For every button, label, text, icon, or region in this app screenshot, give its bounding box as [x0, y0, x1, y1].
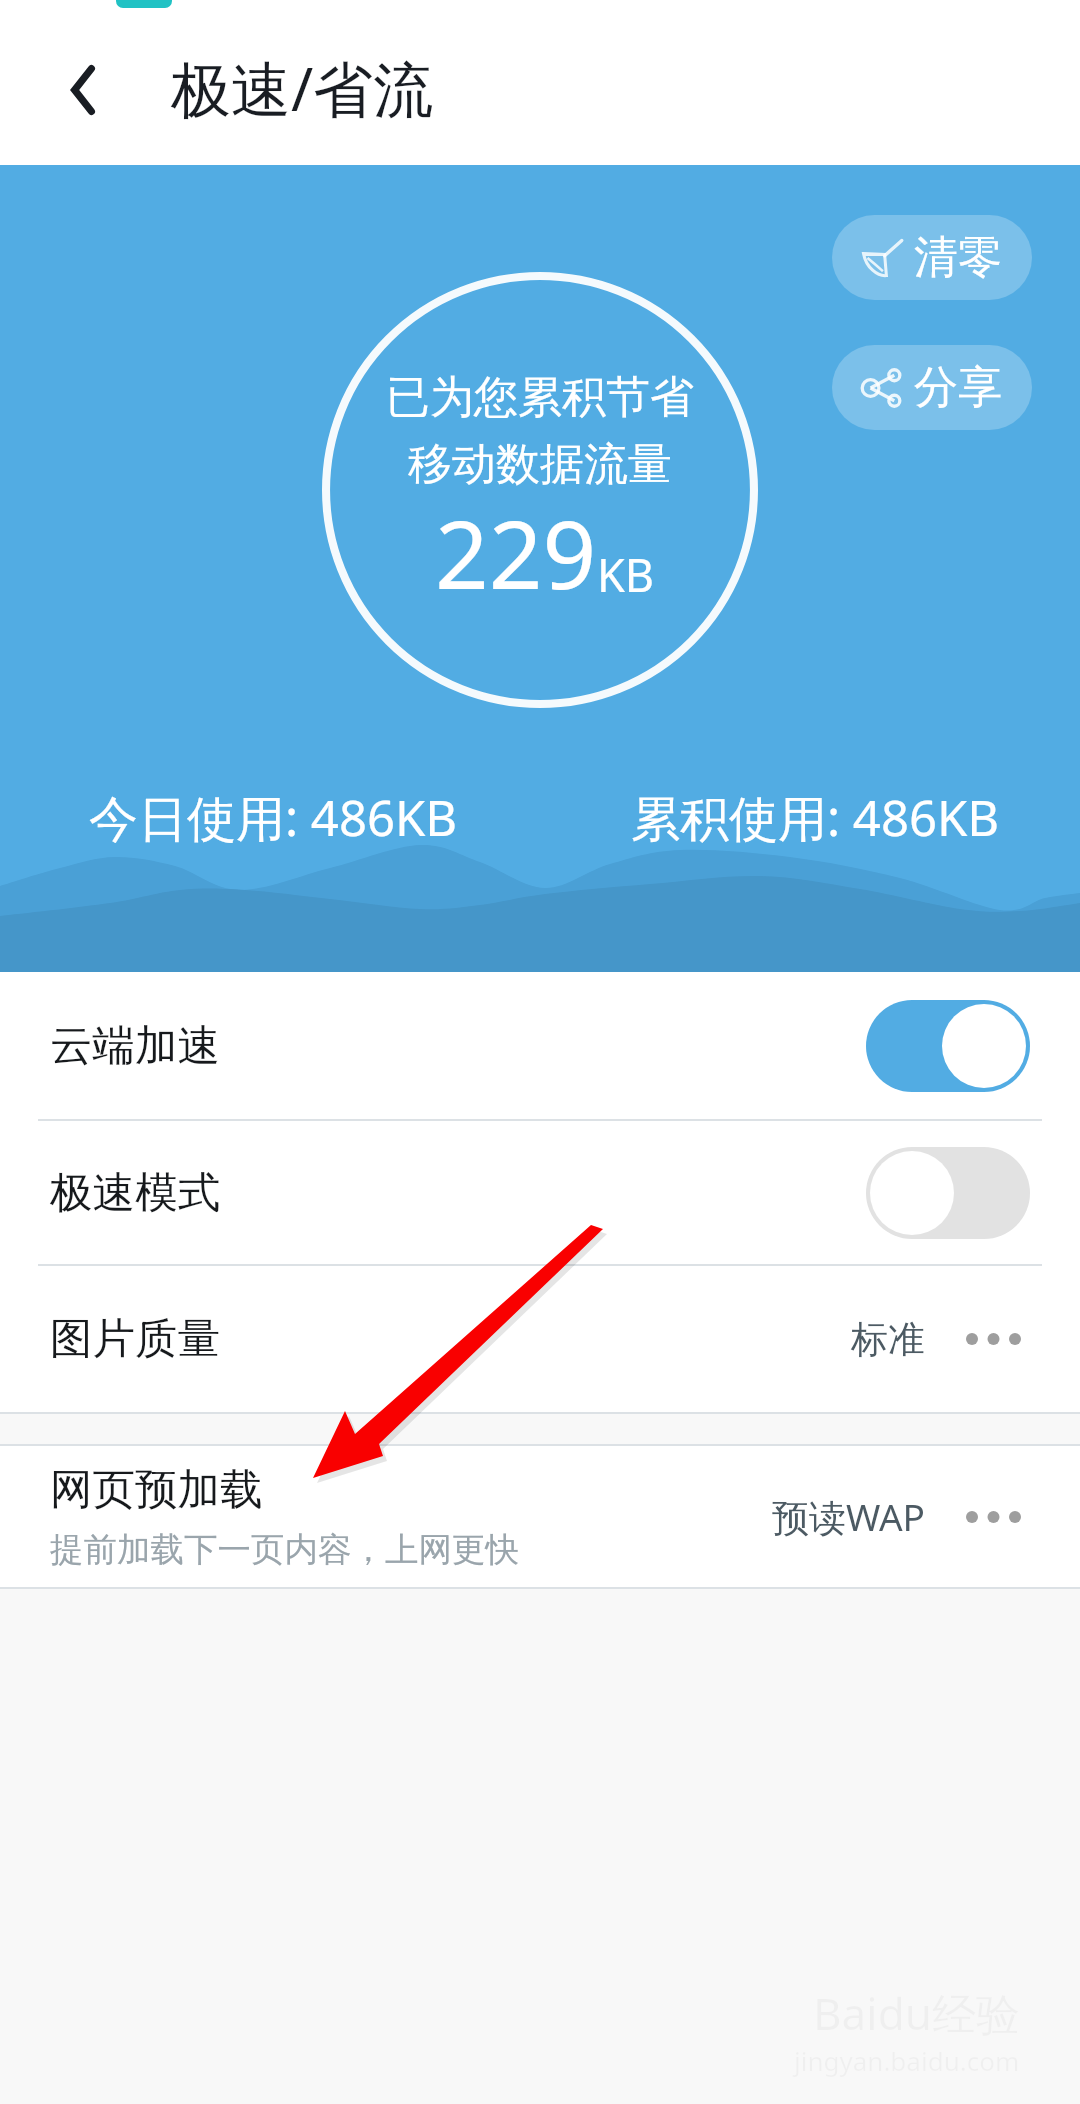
button[interactable]: 极速模式	[0, 1121, 1080, 1264]
staticText: 图片质量	[50, 1312, 220, 1366]
staticText: 清零	[914, 230, 1002, 285]
staticText: 预读WAP	[772, 1491, 925, 1542]
button[interactable]: 网页预加载	[0, 1446, 1080, 1587]
button[interactable]: 云端加速	[0, 972, 1080, 1119]
staticText: 网页预加载	[50, 1463, 263, 1517]
staticText: 229	[435, 489, 597, 617]
staticText: 累积使用: 486KB	[631, 784, 1000, 851]
button[interactable]: Share	[832, 345, 1032, 430]
staticText: 已为您累积节省	[386, 370, 694, 425]
staticText: 分享	[914, 360, 1002, 415]
staticText: 提前加载下一页内容，上网更快	[50, 1529, 519, 1571]
staticText: KB	[597, 544, 655, 605]
staticText: 云端加速	[50, 1019, 220, 1073]
staticText: 极速模式	[50, 1166, 220, 1220]
button[interactable]: Reset statistics	[832, 215, 1032, 300]
button[interactable]: Back	[27, 34, 139, 146]
staticText: 极速/省流	[171, 47, 434, 129]
button[interactable]: 图片质量	[0, 1266, 1080, 1412]
staticText: 标准	[851, 1316, 925, 1363]
staticText: 移动数据流量	[408, 437, 672, 492]
staticText: Baidu经验	[813, 1983, 1020, 2043]
staticText: 今日使用: 486KB	[89, 784, 458, 851]
